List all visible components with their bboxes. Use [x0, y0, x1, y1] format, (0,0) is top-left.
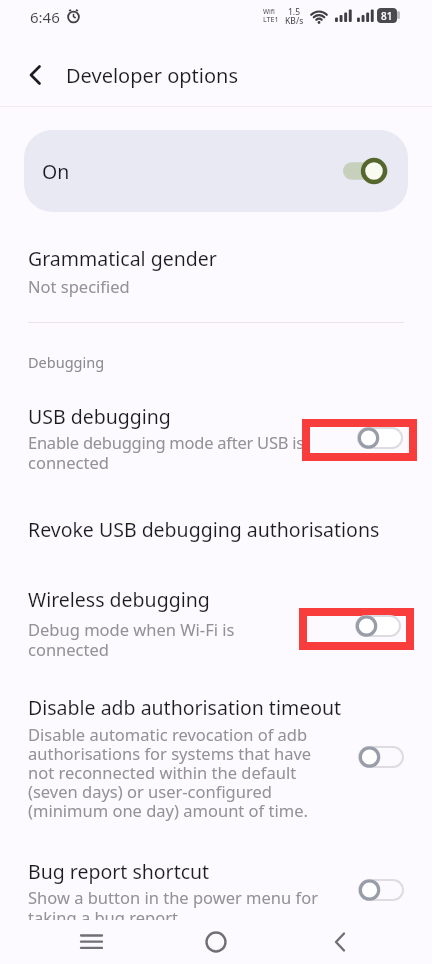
button[interactable]: Bug report shortcut — [0, 851, 432, 931]
staticText: 6:46 — [30, 7, 60, 27]
button[interactable] — [357, 878, 405, 902]
staticText: Developer options — [66, 62, 239, 89]
button[interactable] — [341, 156, 391, 186]
staticText: Revoke USB debugging authorisations — [28, 516, 380, 543]
staticText: 81 — [381, 9, 393, 23]
staticText: USB debugging — [28, 403, 171, 430]
button[interactable] — [60, 920, 124, 964]
staticText: taking a bug report — [28, 906, 178, 928]
staticText: authorisations for systems that have — [28, 742, 312, 764]
staticText: LTE1 — [263, 15, 279, 25]
button[interactable] — [184, 920, 248, 964]
staticText: Bug report shortcut — [28, 858, 210, 885]
button[interactable]: Wireless debugging — [0, 579, 432, 669]
staticText: Grammatical gender — [28, 245, 217, 272]
button[interactable]: Revoke USB debugging authorisations — [0, 505, 432, 553]
button[interactable] — [356, 426, 404, 450]
staticText: connected — [28, 451, 109, 473]
staticText: Enable debugging mode after USB is — [28, 431, 304, 453]
staticText: Not specified — [28, 275, 130, 297]
button[interactable]: On — [24, 130, 408, 212]
button[interactable] — [354, 614, 402, 638]
staticText: connected — [28, 638, 109, 660]
staticText: Wireless debugging — [28, 586, 210, 613]
staticText: Debugging — [28, 352, 105, 372]
button[interactable] — [308, 920, 372, 964]
staticText: Disable automatic revocation of adb — [28, 723, 308, 745]
staticText: (seven days) or user-configured — [28, 780, 272, 802]
button[interactable]: USB debugging — [0, 396, 432, 480]
staticText: 1.5 — [288, 6, 301, 18]
staticText: Debug mode when Wi-Fi is — [28, 618, 235, 640]
staticText: Show a button in the power menu for — [28, 886, 319, 908]
button[interactable] — [357, 745, 405, 769]
staticText: Wifi — [263, 7, 275, 16]
staticText: On — [42, 158, 70, 185]
button[interactable]: Grammatical gender — [0, 232, 432, 304]
staticText: Disable adb authorisation timeout — [28, 694, 342, 721]
staticText: (minimum one day) amount of time. — [28, 799, 308, 821]
button[interactable]: Disable adb authorisation timeout — [0, 687, 432, 827]
staticText: KB/s — [285, 15, 304, 27]
staticText: not reconnected within the default — [28, 761, 297, 783]
button[interactable] — [16, 55, 56, 95]
